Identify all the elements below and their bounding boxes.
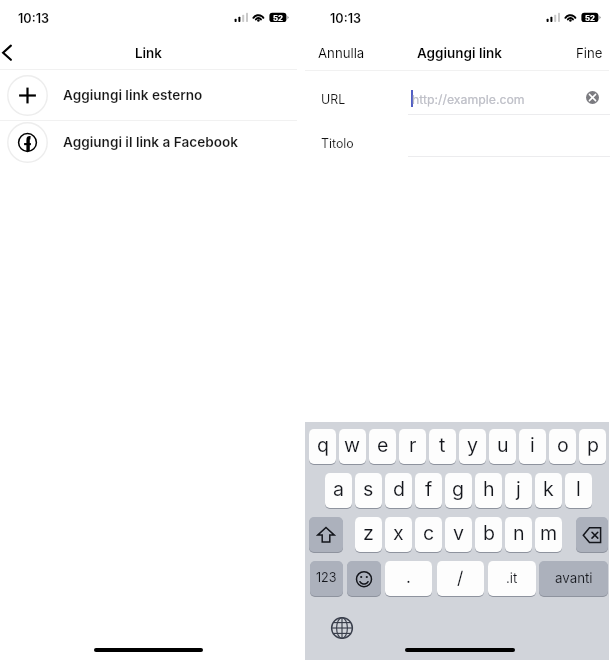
button[interactable]: h bbox=[475, 473, 502, 508]
staticText: Aggiungi link bbox=[417, 45, 502, 61]
staticText: x bbox=[393, 521, 404, 545]
staticText: i bbox=[530, 433, 535, 457]
button[interactable]: Emoji bbox=[347, 561, 381, 596]
button[interactable]: Aggiungi link esterno bbox=[0, 70, 297, 120]
staticText: g bbox=[452, 477, 465, 501]
staticText: u bbox=[497, 433, 509, 457]
staticText: avanti bbox=[555, 570, 593, 586]
staticText: o bbox=[557, 433, 569, 457]
staticText: w bbox=[344, 433, 361, 457]
button[interactable]: g bbox=[445, 473, 472, 508]
staticText: Aggiungi il link a Facebook bbox=[63, 134, 239, 150]
staticText: URL bbox=[321, 92, 346, 107]
button[interactable]: v bbox=[445, 517, 472, 552]
button[interactable]: z bbox=[355, 517, 382, 552]
button[interactable]: i bbox=[519, 429, 546, 464]
staticText: 10:13 bbox=[330, 11, 361, 26]
staticText: / bbox=[457, 567, 464, 588]
button[interactable]: r bbox=[399, 429, 426, 464]
button[interactable]: y bbox=[459, 429, 486, 464]
button[interactable]: 123 bbox=[310, 561, 343, 596]
staticText: p bbox=[587, 433, 599, 457]
button[interactable]: d bbox=[385, 473, 412, 508]
button[interactable]: Aggiungi il link a Facebook bbox=[0, 121, 297, 163]
staticText: c bbox=[423, 521, 435, 545]
button[interactable]: t bbox=[429, 429, 456, 464]
button[interactable]: x bbox=[385, 517, 412, 552]
staticText: l bbox=[576, 477, 581, 501]
button[interactable]: p bbox=[579, 429, 606, 464]
button[interactable]: Fine bbox=[570, 45, 609, 61]
staticText: n bbox=[513, 521, 525, 545]
staticText: s bbox=[363, 477, 374, 501]
staticText: Link bbox=[135, 45, 162, 61]
staticText: 52 bbox=[585, 13, 595, 22]
staticText: .it bbox=[506, 570, 518, 586]
button[interactable]: Cambia lingua bbox=[329, 615, 355, 641]
staticText: r bbox=[409, 433, 417, 457]
staticText: Aggiungi link esterno bbox=[63, 87, 203, 103]
button[interactable]: Cancella bbox=[576, 517, 608, 552]
staticText: m bbox=[540, 521, 558, 545]
staticText: Titolo bbox=[321, 136, 354, 151]
button[interactable]: Maiuscole bbox=[309, 517, 343, 552]
staticText: b bbox=[483, 521, 495, 545]
staticText: z bbox=[363, 521, 374, 545]
staticText: k bbox=[543, 477, 554, 501]
staticText: y bbox=[467, 433, 479, 457]
staticText: q bbox=[317, 433, 329, 457]
staticText: 10:13 bbox=[18, 11, 49, 26]
button[interactable]: . bbox=[385, 561, 432, 596]
button[interactable]: q bbox=[309, 429, 336, 464]
button[interactable]: .it bbox=[488, 561, 536, 596]
button[interactable]: / bbox=[437, 561, 484, 596]
button[interactable]: l bbox=[565, 473, 592, 508]
staticText: 123 bbox=[316, 570, 337, 585]
button[interactable]: a bbox=[325, 473, 352, 508]
staticText: a bbox=[333, 477, 345, 501]
staticText: d bbox=[393, 477, 405, 501]
button[interactable]: o bbox=[549, 429, 576, 464]
staticText: http://example.com bbox=[412, 92, 525, 107]
button[interactable]: Annulla bbox=[305, 45, 371, 61]
button[interactable]: avanti bbox=[539, 561, 608, 596]
staticText: h bbox=[483, 477, 495, 501]
button[interactable]: Indietro bbox=[0, 35, 30, 65]
staticText: 52 bbox=[273, 13, 283, 22]
button[interactable]: c bbox=[415, 517, 442, 552]
button[interactable]: e bbox=[369, 429, 396, 464]
staticText: v bbox=[453, 521, 465, 545]
button[interactable]: Cancella testo bbox=[580, 85, 604, 109]
button[interactable]: b bbox=[475, 517, 502, 552]
staticText: j bbox=[516, 477, 521, 501]
button[interactable]: w bbox=[339, 429, 366, 464]
button[interactable]: s bbox=[355, 473, 382, 508]
button[interactable]: j bbox=[505, 473, 532, 508]
button[interactable]: k bbox=[535, 473, 562, 508]
staticText: . bbox=[406, 567, 411, 588]
button[interactable]: u bbox=[489, 429, 516, 464]
button[interactable]: m bbox=[535, 517, 562, 552]
button[interactable]: f bbox=[415, 473, 442, 508]
staticText: t bbox=[439, 433, 446, 457]
button[interactable]: n bbox=[505, 517, 532, 552]
staticText: f bbox=[425, 477, 433, 501]
staticText: e bbox=[377, 433, 389, 457]
